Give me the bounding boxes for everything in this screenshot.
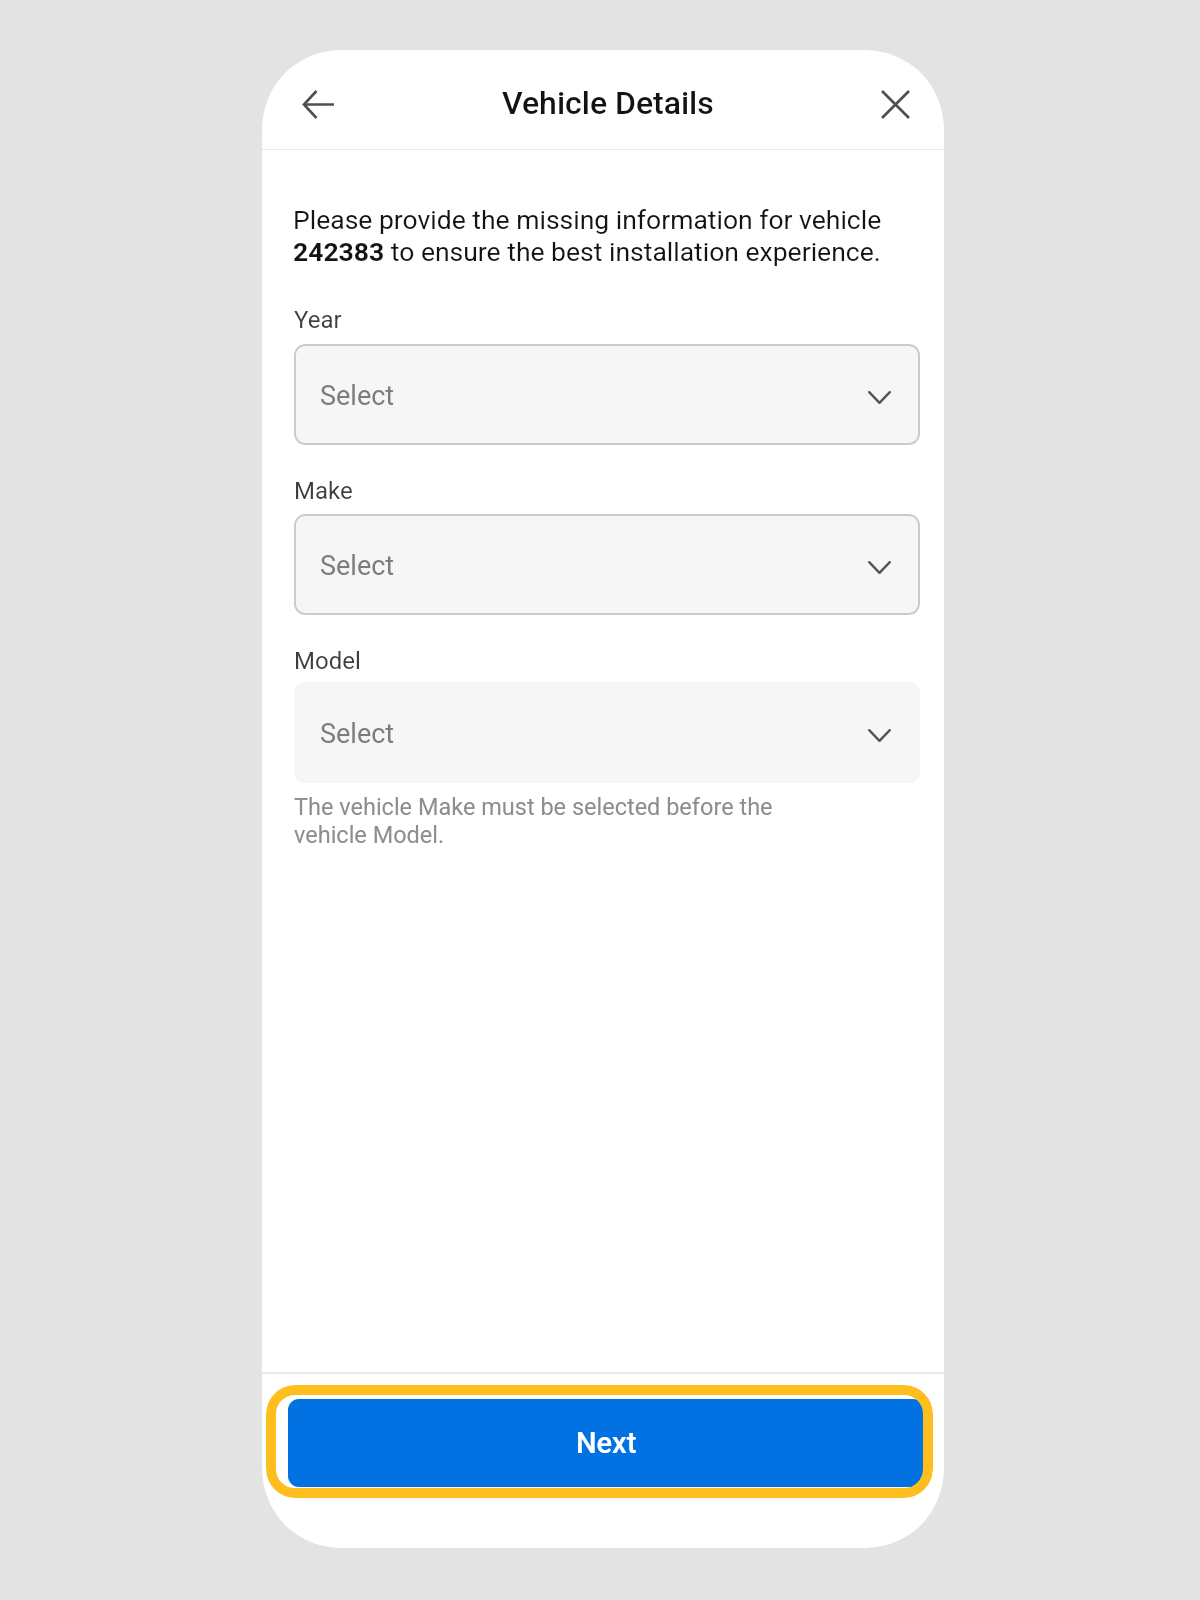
- staticText: The vehicle Make must be selected before…: [294, 793, 773, 849]
- staticText: Year: [294, 306, 342, 334]
- button[interactable]: Select: [294, 682, 920, 783]
- staticText: Select: [320, 380, 395, 412]
- button[interactable]: Back: [286, 72, 350, 136]
- staticText: Model: [294, 647, 361, 675]
- staticText: Vehicle Details: [502, 84, 714, 122]
- button[interactable]: Next: [266, 1385, 933, 1498]
- staticText: Make: [294, 477, 353, 505]
- button[interactable]: Close: [863, 72, 927, 136]
- staticText: Select: [320, 718, 395, 750]
- button[interactable]: Select: [294, 514, 920, 615]
- staticText: Select: [320, 550, 395, 582]
- staticText: Next: [576, 1426, 637, 1460]
- staticText: Please provide the missing information f…: [293, 203, 911, 267]
- button[interactable]: Select: [294, 344, 920, 445]
